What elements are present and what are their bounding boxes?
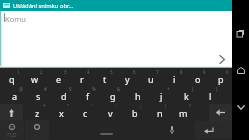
staticText: $ bbox=[69, 86, 72, 92]
staticText: ) bbox=[216, 86, 218, 92]
button[interactable]: b bbox=[123, 104, 146, 121]
button[interactable]: Backspace bbox=[209, 104, 232, 121]
staticText: e bbox=[56, 73, 62, 85]
button[interactable]: Settings bbox=[25, 120, 49, 140]
staticText: 0 bbox=[226, 69, 229, 75]
staticText: : bbox=[116, 103, 118, 109]
button[interactable]: x bbox=[50, 104, 73, 121]
button[interactable]: z bbox=[26, 104, 49, 121]
button[interactable]: Shift bbox=[0, 104, 23, 121]
button[interactable]: y bbox=[116, 70, 139, 87]
button[interactable]: Ukládání snímku obr... bbox=[0, 0, 232, 11]
button[interactable]: w bbox=[23, 70, 46, 87]
staticText: w bbox=[31, 73, 39, 85]
staticText: l bbox=[209, 90, 212, 102]
staticText: g bbox=[110, 90, 116, 102]
staticText: " bbox=[67, 103, 69, 109]
button[interactable]: g bbox=[101, 87, 124, 104]
staticText: a bbox=[12, 90, 18, 102]
button[interactable]: v bbox=[99, 104, 122, 121]
staticText: @ bbox=[19, 86, 24, 92]
staticText: ! bbox=[165, 103, 167, 109]
button[interactable]: d bbox=[52, 87, 75, 104]
staticText: m bbox=[179, 107, 188, 119]
staticText: k bbox=[184, 90, 189, 102]
button[interactable]: Hide keyboard bbox=[232, 98, 249, 116]
button[interactable]: k bbox=[175, 87, 198, 104]
staticText: h bbox=[135, 90, 141, 102]
staticText: i bbox=[173, 73, 176, 85]
staticText: 7 bbox=[156, 69, 159, 75]
staticText: Ukládání snímku obr... bbox=[13, 2, 74, 10]
button[interactable]: i bbox=[163, 70, 186, 87]
staticText: + bbox=[167, 86, 170, 92]
staticText: 9 bbox=[203, 69, 206, 75]
button[interactable]: Home bbox=[232, 61, 249, 79]
staticText: 2 bbox=[40, 69, 43, 75]
staticText: ? bbox=[189, 103, 191, 109]
staticText: ' bbox=[91, 103, 93, 109]
staticText: 4 bbox=[87, 69, 90, 75]
staticText: # bbox=[44, 86, 47, 92]
staticText: % bbox=[92, 86, 96, 92]
staticText: s bbox=[36, 90, 41, 102]
staticText: q bbox=[9, 73, 15, 85]
button[interactable]: f bbox=[76, 87, 99, 104]
staticText: d bbox=[61, 90, 67, 102]
staticText: 1 bbox=[17, 69, 20, 75]
button[interactable]: a bbox=[3, 87, 26, 104]
staticText: p bbox=[218, 73, 224, 85]
staticText: - bbox=[143, 86, 145, 92]
staticText: z bbox=[35, 107, 40, 119]
button[interactable]: j bbox=[150, 87, 173, 104]
staticText: c bbox=[83, 107, 88, 119]
staticText: y bbox=[125, 73, 130, 85]
staticText: 6 bbox=[133, 69, 136, 75]
button[interactable]: q bbox=[0, 70, 23, 87]
staticText: r bbox=[80, 73, 84, 85]
staticText: Komu bbox=[5, 14, 26, 24]
button[interactable]: Expand bbox=[212, 50, 232, 68]
staticText: * bbox=[43, 103, 46, 109]
button[interactable]: n bbox=[148, 104, 171, 121]
button[interactable]: u bbox=[139, 70, 162, 87]
button[interactable]: e bbox=[47, 70, 70, 87]
staticText: ; bbox=[140, 103, 142, 109]
staticText: ?123 bbox=[7, 132, 17, 138]
button[interactable]: p bbox=[209, 70, 232, 87]
button[interactable]: m bbox=[172, 104, 195, 121]
staticText: x bbox=[59, 107, 64, 119]
button[interactable]: Voice input bbox=[161, 121, 183, 139]
button[interactable]: Symbols bbox=[0, 120, 24, 140]
button[interactable]: o bbox=[186, 70, 209, 87]
staticText: v bbox=[108, 107, 113, 119]
button[interactable]: t bbox=[93, 70, 116, 87]
button[interactable]: Recents bbox=[232, 24, 249, 42]
button[interactable]: s bbox=[27, 87, 50, 104]
staticText: ( bbox=[192, 86, 194, 92]
button[interactable]: c bbox=[74, 104, 97, 121]
staticText: , bbox=[36, 131, 38, 138]
staticText: u bbox=[148, 73, 154, 85]
staticText: f bbox=[86, 90, 90, 102]
staticText: n bbox=[157, 107, 163, 119]
button[interactable]: r bbox=[70, 70, 93, 87]
staticText: j bbox=[160, 90, 163, 102]
button[interactable]: l bbox=[199, 87, 222, 104]
staticText: t bbox=[103, 73, 107, 85]
staticText: b bbox=[132, 107, 138, 119]
staticText: 5 bbox=[110, 69, 113, 75]
staticText: o bbox=[195, 73, 201, 85]
button[interactable]: h bbox=[126, 87, 149, 104]
button[interactable]: Enter bbox=[195, 121, 232, 139]
staticText: & bbox=[117, 86, 121, 92]
staticText: 8 bbox=[180, 69, 183, 75]
staticText: 3 bbox=[64, 69, 67, 75]
button[interactable]: Space bbox=[50, 120, 161, 140]
